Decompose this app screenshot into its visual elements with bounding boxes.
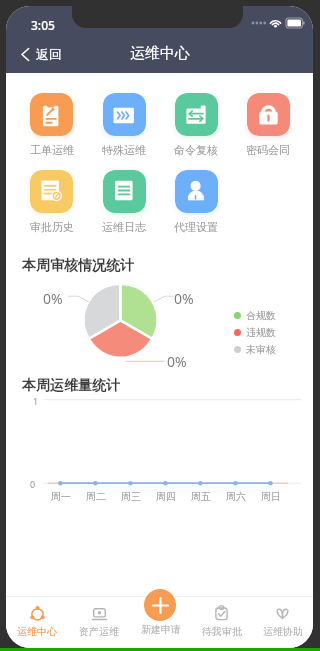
button[interactable]: 命令复核 [160, 93, 232, 157]
button[interactable]: 新建申请 [144, 589, 176, 621]
staticText: 1 [33, 395, 39, 407]
button[interactable]: 审批历史 [15, 170, 88, 234]
button[interactable]: 特殊运维 [88, 93, 160, 157]
staticText: 代理设置 [174, 220, 218, 234]
button[interactable]: 密码会同 [232, 93, 304, 157]
button[interactable]: 工单运维 [15, 93, 88, 157]
staticText: 新建申请 [141, 623, 181, 636]
staticText: 审批历史 [30, 220, 74, 234]
staticText: 运维协助 [263, 625, 303, 638]
staticText: 周六 [226, 490, 246, 503]
staticText: 3:05 [31, 17, 55, 33]
staticText: 周五 [191, 490, 211, 503]
button[interactable]: 运维协助 [252, 597, 313, 648]
staticText: 本周运维量统计 [22, 377, 120, 395]
staticText: 周一 [51, 490, 71, 503]
staticText: 0% [167, 352, 187, 371]
staticText: 特殊运维 [102, 143, 146, 157]
staticText: 密码会同 [246, 143, 290, 157]
staticText: 工单运维 [30, 143, 74, 157]
staticText: 命令复核 [174, 143, 218, 157]
staticText: 周三 [121, 490, 141, 503]
staticText: 周四 [156, 490, 176, 503]
button[interactable]: 运维日志 [88, 170, 160, 234]
staticText: 待我审批 [202, 625, 242, 638]
staticText: 合规数 [246, 309, 276, 322]
staticText: 运维中心 [17, 625, 57, 638]
button[interactable]: 运维中心 [6, 597, 68, 648]
button[interactable]: 待我审批 [191, 597, 252, 648]
staticText: 0 [30, 478, 36, 490]
staticText: 返回 [36, 46, 62, 62]
staticText: 违规数 [246, 326, 276, 339]
button[interactable]: 代理设置 [160, 170, 232, 234]
staticText: 资产运维 [79, 625, 119, 638]
button[interactable]: 返回 [14, 42, 69, 66]
staticText: 运维日志 [102, 220, 146, 234]
staticText: 未审核 [246, 343, 276, 356]
staticText: 本周审核情况统计 [22, 257, 134, 275]
staticText: 0% [43, 289, 63, 308]
staticText: 周二 [86, 490, 106, 503]
staticText: 运维中心 [130, 44, 190, 63]
staticText: 周日 [261, 490, 281, 503]
button[interactable]: 资产运维 [68, 597, 130, 648]
staticText: 0% [174, 289, 194, 308]
